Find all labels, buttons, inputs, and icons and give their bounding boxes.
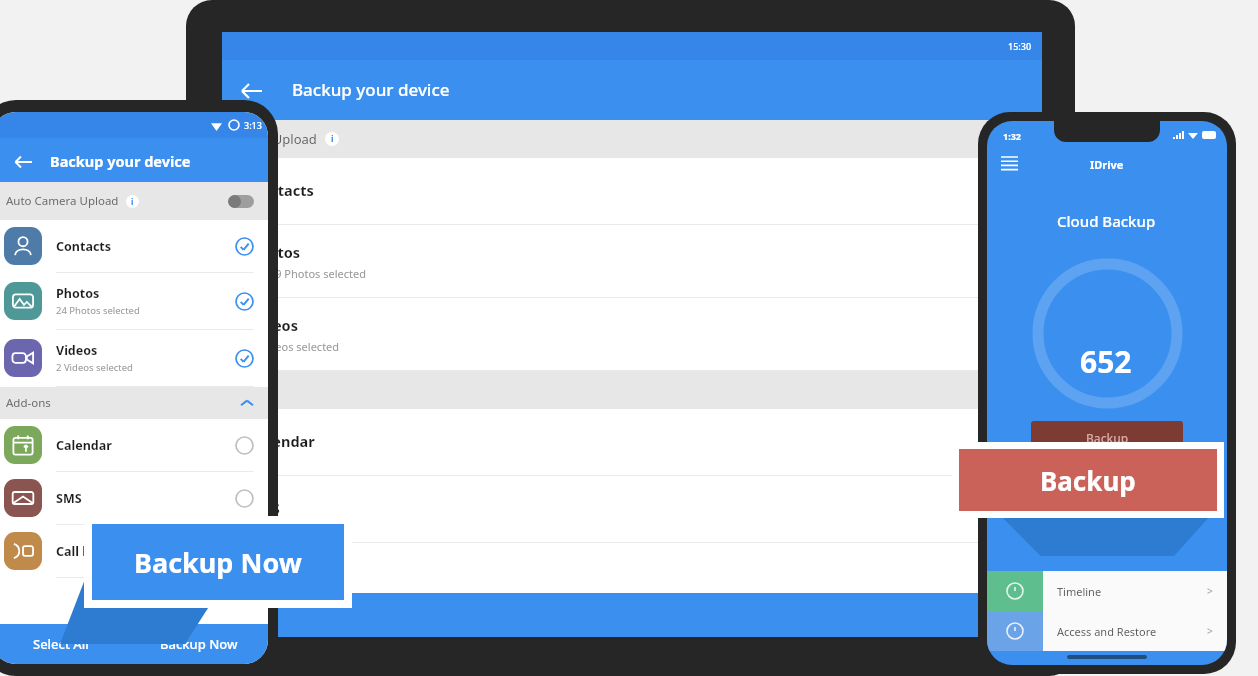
staticText: SMS [250,498,280,518]
staticText: Backup your device [50,151,191,171]
button[interactable]: Videos [222,298,1042,371]
button[interactable]: Calendar [222,409,1042,476]
button[interactable]: Calendar [0,419,268,472]
button[interactable] [222,593,1042,637]
staticText: Backup Now [134,544,302,581]
staticText: Contacts [56,238,112,255]
staticText: 11239 Photos selected [250,266,366,281]
staticText: IDrive [1090,157,1124,172]
button[interactable]: Photos [222,225,1042,298]
staticText: Calendar [56,437,112,454]
staticText: Videos [56,342,98,359]
button[interactable]: Access and Restore [987,611,1227,651]
staticText: Cloud Backup [1057,211,1156,231]
button[interactable]: Back [14,153,32,171]
staticText: Backup Now [160,635,238,653]
staticText: 2 Videos selected [56,361,133,374]
staticText: Backup your device [292,78,450,101]
button[interactable]: Videos [0,330,268,387]
button[interactable]: Backup Now [130,624,268,664]
staticText: Videos [250,315,298,335]
button[interactable]: SMS [0,472,268,525]
staticText: Contacts [250,180,314,200]
staticText: Backup [1040,463,1136,498]
staticText: Timeline [1057,584,1102,599]
button[interactable]: Contacts [222,158,1042,225]
staticText: Camera Upload [222,130,317,148]
staticText: Add-ons [6,395,51,411]
staticText: Photos [250,242,301,262]
staticText: 1:32 [1003,130,1021,142]
staticText: 15:30 [1008,40,1032,52]
staticText: > [1207,624,1213,638]
button[interactable]: Select All [0,624,130,664]
button[interactable]: Auto Camera Upload [6,182,254,220]
staticText: Photos [56,285,100,302]
staticText: Calendar [250,431,315,451]
staticText: 3:13 [244,119,262,131]
button[interactable]: Menu [1001,157,1018,171]
button[interactable]: Photos [0,273,268,330]
staticText: i [131,196,134,207]
staticText: Access and Restore [1057,624,1157,639]
staticText: SMS [56,490,82,507]
button[interactable]: Timeline [987,571,1227,611]
button[interactable]: Backup [959,449,1217,511]
staticText: 652 [1080,341,1132,382]
button[interactable]: Call logs [0,525,268,578]
staticText: i [331,133,334,145]
button[interactable]: Backup Now [92,524,344,600]
button[interactable]: Back [240,80,262,102]
button[interactable]: Backup [1031,421,1183,455]
button[interactable]: Add-ons [6,387,254,419]
button[interactable]: Contacts [0,220,268,273]
staticText: Call logs [56,543,108,560]
button[interactable]: SMS [222,476,1042,543]
staticText: 24 Photos selected [56,304,140,317]
staticText: Backup [1086,430,1129,446]
staticText: > [1207,584,1213,598]
staticText: 2 Videos selected [250,339,340,354]
staticText: Auto Camera Upload [6,193,119,209]
staticText: Select All [33,635,89,653]
staticText: ns [222,382,237,400]
